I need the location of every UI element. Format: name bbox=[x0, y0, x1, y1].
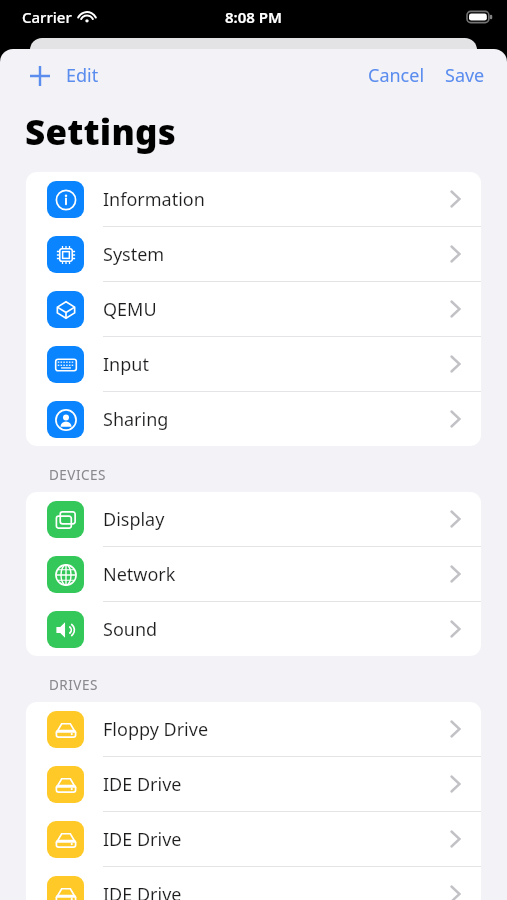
staticText: Display bbox=[103, 507, 165, 532]
staticText: IDE Drive bbox=[103, 882, 182, 900]
button[interactable]: Sharing bbox=[26, 392, 481, 446]
button[interactable]: System bbox=[26, 227, 481, 281]
button[interactable]: Edit bbox=[62, 57, 103, 94]
staticText: IDE Drive bbox=[103, 827, 182, 852]
button[interactable]: Save bbox=[441, 57, 489, 94]
staticText: 8:08 PM bbox=[225, 7, 282, 27]
staticText: System bbox=[103, 242, 165, 267]
staticText: Network bbox=[103, 562, 176, 587]
button[interactable]: Input bbox=[26, 337, 481, 391]
staticText: Carrier bbox=[22, 7, 72, 27]
staticText: Sound bbox=[103, 617, 158, 642]
button[interactable]: IDE Drive bbox=[26, 867, 481, 900]
staticText: Cancel bbox=[368, 63, 425, 88]
staticText: Information bbox=[103, 187, 205, 212]
button[interactable]: IDE Drive bbox=[26, 757, 481, 811]
staticText: DEVICES bbox=[49, 466, 106, 484]
staticText: Save bbox=[445, 63, 485, 88]
button[interactable]: QEMU bbox=[26, 282, 481, 336]
button[interactable]: Sound bbox=[26, 602, 481, 656]
button[interactable]: Network bbox=[26, 547, 481, 601]
staticText: Edit bbox=[66, 63, 99, 88]
staticText: Settings bbox=[25, 108, 177, 156]
button[interactable]: Display bbox=[26, 492, 481, 546]
staticText: Floppy Drive bbox=[103, 717, 209, 742]
staticText: DRIVES bbox=[49, 676, 98, 694]
staticText: Sharing bbox=[103, 407, 169, 432]
staticText: QEMU bbox=[103, 297, 157, 322]
staticText: IDE Drive bbox=[103, 772, 182, 797]
button[interactable]: Cancel bbox=[362, 57, 431, 94]
button[interactable]: Information bbox=[26, 172, 481, 226]
button[interactable]: Floppy Drive bbox=[26, 702, 481, 756]
button[interactable]: Add bbox=[22, 58, 58, 94]
staticText: Input bbox=[103, 352, 149, 377]
button[interactable]: IDE Drive bbox=[26, 812, 481, 866]
